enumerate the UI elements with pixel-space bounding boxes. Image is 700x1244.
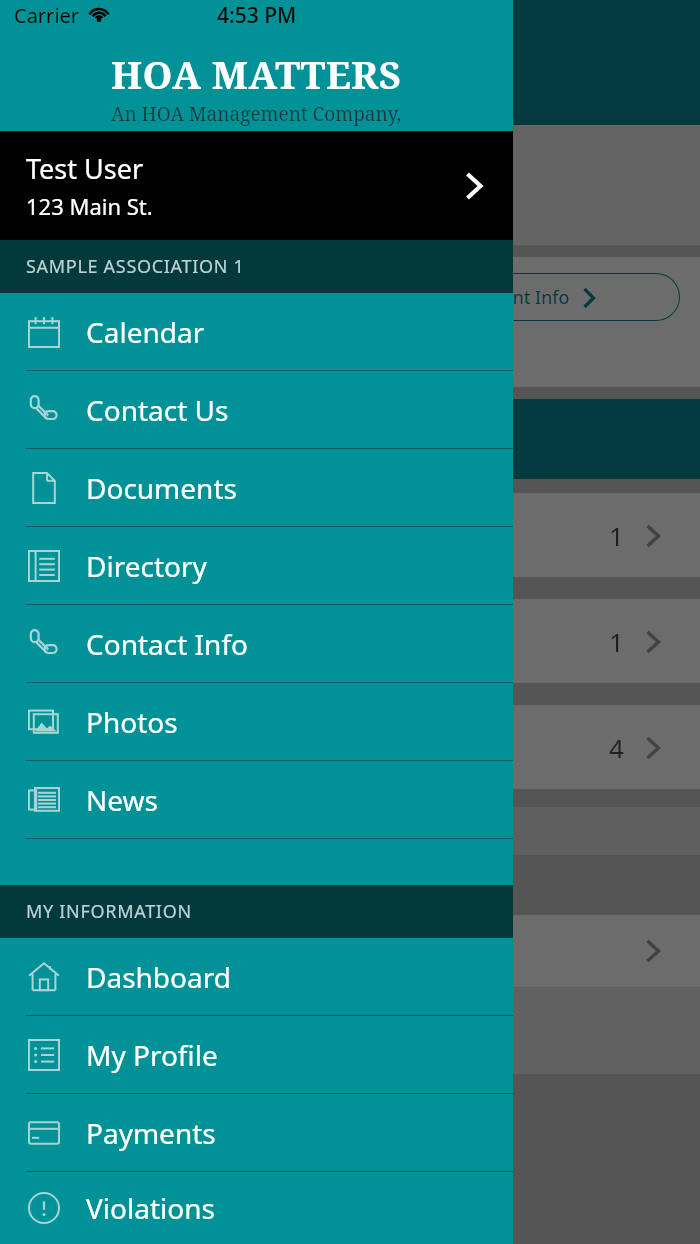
staticText: Contact Info	[86, 625, 248, 663]
staticText: SAMPLE ASSOCIATION 1	[26, 254, 245, 279]
staticText: HOA MATTERS	[111, 48, 402, 100]
button[interactable]: Payments	[0, 1094, 513, 1172]
button[interactable]: Photos	[0, 683, 513, 761]
staticText: Photos	[86, 703, 178, 741]
button[interactable]: News	[0, 761, 513, 839]
button[interactable]: Calendar	[0, 293, 513, 371]
staticText: 123 Main St.	[26, 191, 153, 221]
staticText: News	[86, 781, 158, 819]
button[interactable]: 1	[0, 599, 700, 683]
staticText: Directory	[86, 547, 207, 585]
staticText: 1	[609, 624, 624, 659]
staticText: Contact Us	[86, 391, 229, 429]
button[interactable]: Documents	[304, 1002, 396, 1060]
staticText: 4	[609, 730, 624, 765]
button[interactable]: Violations	[0, 1172, 513, 1244]
staticText: 4:53 PM	[217, 1, 297, 30]
staticText: Documents	[86, 469, 237, 507]
button[interactable]: Contact Info	[0, 605, 513, 683]
button[interactable]: 4	[0, 705, 700, 789]
button[interactable]: Documents	[0, 449, 513, 527]
staticText: My Profile	[86, 1036, 218, 1074]
button[interactable]	[0, 915, 700, 987]
staticText: Test User	[26, 150, 144, 187]
button[interactable]: Dashboard	[0, 938, 513, 1016]
staticText: Account Info	[462, 285, 570, 310]
button[interactable]: My Profile	[0, 1016, 513, 1094]
staticText: Calendar	[86, 313, 205, 351]
button[interactable]: Test User	[0, 131, 513, 240]
button[interactable]: 1	[0, 493, 700, 577]
staticText: An HOA Management Company,	[111, 101, 402, 127]
button[interactable]: Account Info	[380, 273, 680, 321]
staticText: Dashboard	[86, 958, 231, 996]
staticText: Carrier	[14, 2, 80, 29]
staticText: Violations	[86, 1189, 215, 1227]
staticText: Payments	[86, 1114, 216, 1152]
staticText: 1	[609, 518, 624, 553]
button[interactable]: Directory	[0, 527, 513, 605]
button[interactable]: Add Account	[0, 154, 700, 216]
button[interactable]: Contact Us	[0, 371, 513, 449]
staticText: MY INFORMATION	[26, 899, 192, 924]
